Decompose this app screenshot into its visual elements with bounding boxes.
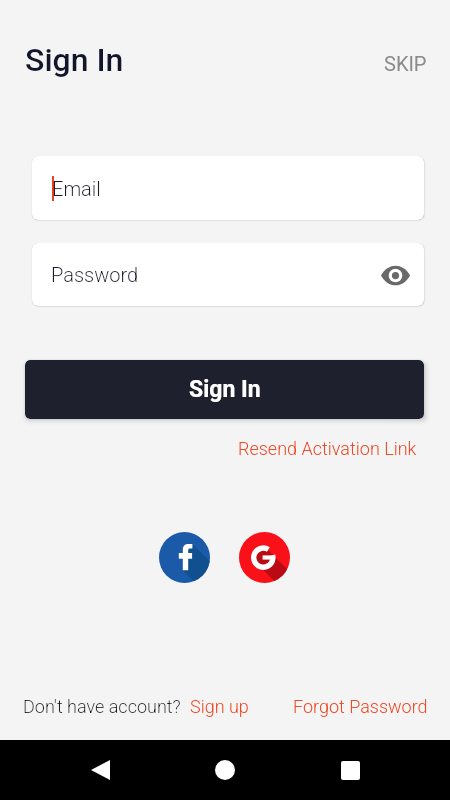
button[interactable]: Email: [32, 156, 424, 220]
button[interactable]: Sign in with Facebook: [159, 532, 210, 583]
button[interactable]: Show password: [377, 257, 413, 293]
staticText: Don't have account?: [23, 696, 181, 717]
button[interactable]: Password: [32, 243, 424, 306]
button[interactable]: Home: [202, 747, 248, 793]
button[interactable]: Sign in with Google: [239, 532, 290, 583]
staticText: Resend Activation Link: [238, 438, 417, 459]
button[interactable]: Recents: [327, 747, 373, 793]
button[interactable]: Forgot Password: [287, 690, 434, 723]
button[interactable]: Sign In: [25, 360, 424, 419]
staticText: Sign In: [189, 376, 261, 403]
button[interactable]: Sign up: [181, 690, 254, 723]
staticText: Email: [52, 177, 101, 200]
button[interactable]: Back: [77, 747, 123, 793]
staticText: Password: [51, 263, 139, 286]
staticText: Forgot Password: [293, 696, 428, 717]
staticText: SKIP: [384, 52, 427, 75]
staticText: Sign In: [25, 41, 124, 79]
staticText: Sign up: [190, 696, 249, 717]
button[interactable]: SKIP: [374, 42, 437, 85]
button[interactable]: Resend Activation Link: [228, 428, 427, 469]
